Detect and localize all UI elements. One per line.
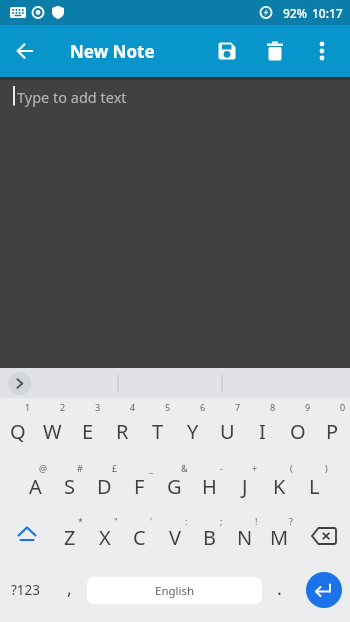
button[interactable]: + — [227, 454, 262, 510]
button[interactable]: ! — [227, 510, 262, 566]
button[interactable]: " — [87, 510, 122, 566]
button[interactable]: 8 — [245, 398, 280, 454]
button[interactable] — [0, 510, 53, 566]
staticText: Z — [64, 524, 76, 551]
staticText: ) — [325, 462, 328, 474]
staticText: + — [252, 462, 258, 474]
staticText: H — [202, 473, 217, 500]
staticText: N — [237, 524, 253, 551]
staticText: 92% — [283, 5, 307, 21]
staticText: O — [290, 418, 306, 445]
staticText: I — [259, 418, 266, 445]
button[interactable] — [203, 25, 251, 77]
staticText: R — [116, 418, 129, 445]
staticText: C — [133, 524, 146, 551]
staticText: # — [77, 462, 83, 474]
button[interactable]: _ — [122, 454, 157, 510]
button[interactable]: ?123 — [0, 566, 52, 622]
staticText: 1 — [25, 401, 31, 413]
staticText: ( — [290, 462, 293, 474]
staticText: 8 — [270, 401, 276, 413]
staticText: G — [167, 473, 182, 500]
button[interactable]: 0 — [315, 398, 350, 454]
staticText: English — [155, 583, 195, 599]
staticText: K — [273, 473, 286, 500]
staticText: Type to add text — [17, 87, 127, 107]
staticText: ! — [255, 515, 258, 527]
staticText: ; — [220, 515, 223, 527]
staticText: L — [309, 473, 320, 500]
staticText: 5 — [165, 401, 171, 413]
staticText: 9 — [305, 401, 311, 413]
button[interactable]: & — [157, 454, 192, 510]
button[interactable] — [297, 510, 350, 566]
staticText: X — [99, 524, 111, 551]
button[interactable]: 6 — [175, 398, 210, 454]
staticText: 0 — [340, 401, 346, 413]
button[interactable]: ? — [262, 510, 297, 566]
staticText: ' — [150, 515, 153, 527]
staticText: A — [29, 473, 42, 500]
staticText: 7 — [235, 401, 241, 413]
staticText: Q — [10, 418, 26, 445]
staticText: 3 — [95, 401, 101, 413]
staticText: £ — [112, 462, 118, 474]
button[interactable]: 3 — [70, 398, 105, 454]
staticText: M — [270, 524, 289, 551]
button[interactable]: . — [262, 566, 297, 622]
staticText: - — [220, 462, 223, 474]
staticText: B — [203, 524, 216, 551]
staticText: 10:17 — [312, 5, 343, 21]
staticText: 2 — [60, 401, 66, 413]
button[interactable]: English — [87, 577, 262, 604]
button[interactable]: # — [52, 454, 87, 510]
staticText: & — [181, 462, 188, 474]
button[interactable]: @ — [18, 454, 52, 510]
staticText: 4 — [130, 401, 136, 413]
staticText: P — [326, 418, 339, 445]
staticText: V — [169, 524, 181, 551]
button[interactable]: - — [192, 454, 227, 510]
button[interactable]: 2 — [35, 398, 70, 454]
staticText: W — [43, 418, 62, 445]
button[interactable]: 4 — [105, 398, 140, 454]
button[interactable]: ' — [122, 510, 157, 566]
staticText: New Note — [70, 40, 155, 63]
staticText: E — [82, 418, 94, 445]
button[interactable]: ( — [262, 454, 297, 510]
staticText: _ — [149, 462, 153, 474]
staticText: D — [97, 473, 112, 500]
staticText: ?123 — [11, 581, 41, 599]
button[interactable]: £ — [87, 454, 122, 510]
staticText: T — [152, 418, 164, 445]
staticText: ? — [289, 515, 293, 527]
button[interactable]: ) — [297, 454, 332, 510]
button[interactable] — [299, 25, 345, 77]
staticText: : — [185, 515, 188, 527]
button[interactable]: Type to add text — [0, 77, 350, 368]
button[interactable]: 5 — [140, 398, 175, 454]
button[interactable]: : — [157, 510, 192, 566]
staticText: U — [220, 418, 235, 445]
button[interactable] — [8, 372, 31, 395]
staticText: 6 — [200, 401, 206, 413]
staticText: @ — [39, 462, 48, 474]
staticText: , — [67, 576, 72, 601]
button[interactable] — [251, 25, 299, 77]
staticText: . — [277, 576, 282, 601]
button[interactable]: * — [53, 510, 87, 566]
staticText: Y — [187, 418, 199, 445]
button[interactable]: 9 — [280, 398, 315, 454]
button[interactable]: 1 — [0, 398, 35, 454]
staticText: J — [242, 473, 248, 500]
button[interactable] — [297, 566, 350, 622]
button[interactable]: 7 — [210, 398, 245, 454]
staticText: F — [134, 473, 145, 500]
staticText: * — [78, 515, 83, 527]
button[interactable] — [8, 34, 42, 68]
staticText: S — [64, 473, 75, 500]
button[interactable]: , — [52, 566, 87, 622]
button[interactable]: ; — [192, 510, 227, 566]
staticText: " — [114, 515, 118, 527]
